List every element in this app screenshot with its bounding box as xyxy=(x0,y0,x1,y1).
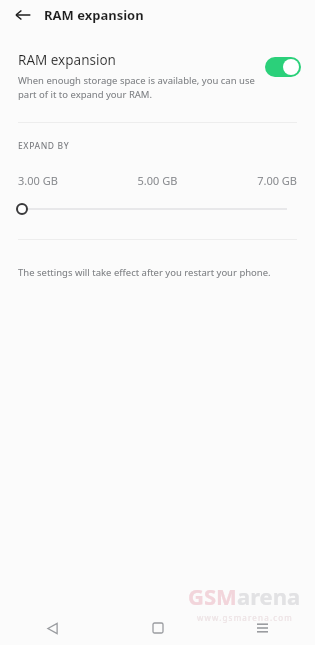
button[interactable]: Home xyxy=(105,611,210,645)
button[interactable]: Expand by slider xyxy=(0,198,315,220)
staticText: 5.00 GB xyxy=(111,173,204,188)
staticText: arena xyxy=(237,581,301,611)
staticText: 3.00 GB xyxy=(18,173,111,188)
staticText: EXPAND BY xyxy=(18,140,70,152)
button[interactable]: Back xyxy=(0,611,105,645)
staticText: www.gsmarena.com xyxy=(197,612,293,623)
button[interactable]: Back xyxy=(12,4,34,26)
button[interactable]: RAM expansion xyxy=(0,51,315,101)
staticText: GSM xyxy=(188,581,237,611)
button[interactable]: RAM expansion toggle xyxy=(265,57,301,77)
staticText: The settings will take effect after you … xyxy=(18,266,271,279)
staticText: RAM expansion xyxy=(44,6,144,24)
staticText: 7.00 GB xyxy=(204,173,297,188)
staticText: RAM expansion xyxy=(18,51,116,69)
staticText: When enough storage space is available, … xyxy=(18,74,257,101)
button[interactable]: Recents xyxy=(210,611,315,645)
